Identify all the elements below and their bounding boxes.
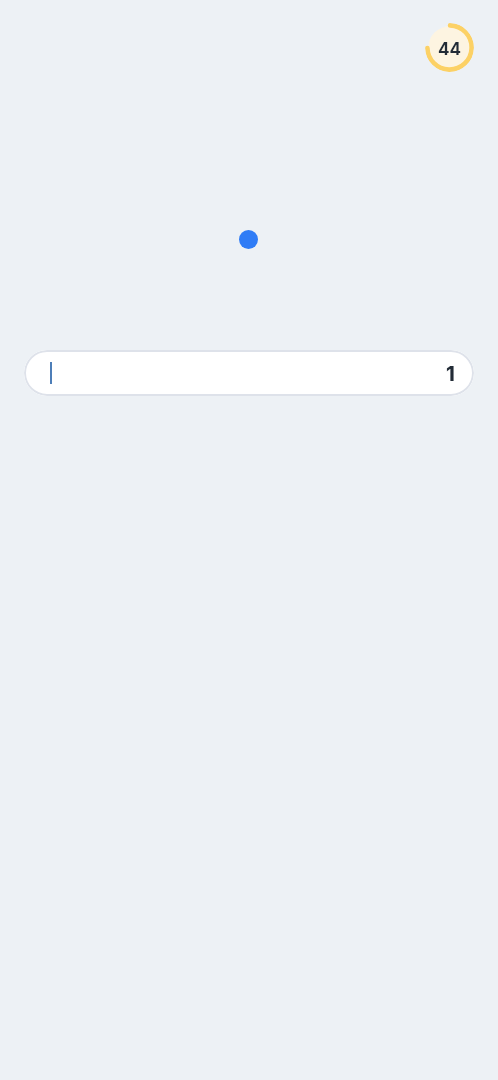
button[interactable]: Progress 44 percent [425,23,474,72]
staticText: 1 [446,362,455,386]
button[interactable]: 1 [24,350,474,396]
staticText: 44 [438,39,461,60]
